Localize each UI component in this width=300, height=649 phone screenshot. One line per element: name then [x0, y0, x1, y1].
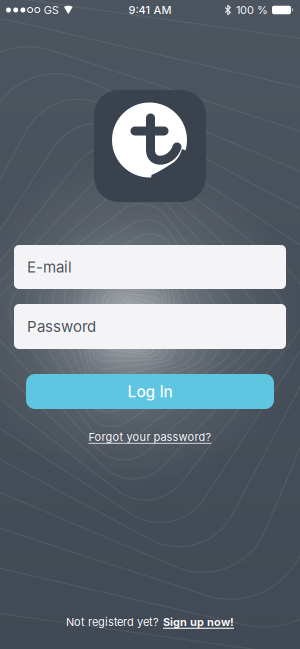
- staticText: Not registerd yet?: [66, 615, 159, 629]
- staticText: 9:41 AM: [128, 3, 171, 17]
- textField[interactable]: E-mail: [14, 245, 286, 289]
- staticText: Log In: [127, 382, 172, 401]
- staticText: Password: [27, 317, 96, 335]
- button[interactable]: Forgot your password?: [88, 430, 211, 444]
- staticText: 100 %: [236, 3, 268, 17]
- button[interactable]: Log In: [26, 374, 274, 409]
- staticText: Forgot your password?: [88, 430, 211, 444]
- secureTextField[interactable]: Password: [14, 304, 286, 349]
- staticText: Sign up now!: [163, 615, 234, 629]
- button[interactable]: Sign up now!: [163, 615, 234, 629]
- staticText: E-mail: [27, 258, 72, 276]
- staticText: GS: [44, 3, 59, 17]
